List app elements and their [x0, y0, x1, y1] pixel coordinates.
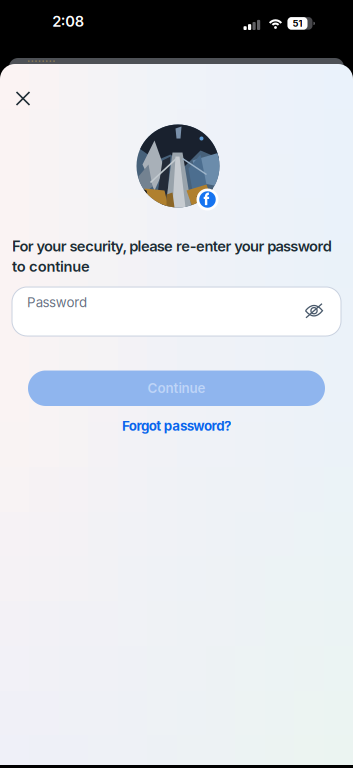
button[interactable]: Password: [12, 287, 341, 336]
button[interactable]: Show password: [299, 296, 329, 326]
button[interactable]: Forgot password?: [0, 417, 353, 435]
staticText: For your security, please re-enter your …: [12, 237, 332, 255]
staticText: 51: [293, 18, 302, 29]
button[interactable]: Continue: [28, 370, 325, 406]
staticText: 2:08: [52, 13, 84, 30]
staticText: Forgot password?: [122, 418, 231, 434]
button[interactable]: Close: [12, 87, 34, 109]
staticText: Continue: [147, 380, 205, 396]
staticText: Password: [27, 294, 87, 310]
staticText: to continue: [12, 258, 90, 275]
